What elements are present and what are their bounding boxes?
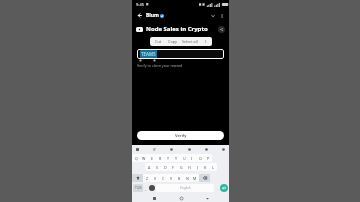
staticText: 9:45 xyxy=(136,2,144,7)
button[interactable]: L xyxy=(209,163,217,171)
staticText: K xyxy=(204,165,207,170)
button[interactable]: Q xyxy=(132,154,140,162)
button[interactable]: Space xyxy=(156,184,214,192)
staticText: V xyxy=(170,176,173,181)
button[interactable]: Keyboard tool 5 xyxy=(221,147,226,152)
button[interactable]: N xyxy=(183,174,191,182)
staticText: L xyxy=(212,165,214,170)
button[interactable]: A xyxy=(145,163,153,171)
staticText: TEAM5 xyxy=(141,51,156,57)
staticText: A xyxy=(148,165,151,170)
staticText: P xyxy=(207,156,210,161)
button[interactable]: I xyxy=(188,154,196,162)
button[interactable]: Back xyxy=(135,11,144,20)
button[interactable]: Home xyxy=(177,194,185,202)
button[interactable]: Play video xyxy=(136,27,143,32)
button[interactable]: M xyxy=(191,174,199,182)
staticText: G xyxy=(180,165,183,170)
button[interactable]: Keyboard tool 1 xyxy=(152,147,157,152)
staticText: J xyxy=(197,165,198,170)
button[interactable]: Blum xyxy=(146,12,164,19)
staticText: Blum xyxy=(146,12,159,19)
button[interactable]: ?123 xyxy=(133,184,143,192)
button[interactable]: Recent apps xyxy=(150,194,158,202)
other: Shift xyxy=(136,176,140,180)
button[interactable]: X xyxy=(151,174,159,182)
staticText: E xyxy=(151,156,153,161)
staticText: H xyxy=(188,165,191,170)
button[interactable]: Period xyxy=(215,184,220,192)
button[interactable]: Keyboard tool 4 xyxy=(204,147,209,152)
button[interactable]: Expand xyxy=(208,11,217,20)
staticText: Copy xyxy=(168,39,177,44)
button[interactable]: More xyxy=(203,37,208,46)
staticText: English xyxy=(180,186,191,190)
button[interactable]: C xyxy=(159,174,167,182)
staticText: X xyxy=(154,176,157,181)
button[interactable]: T xyxy=(164,154,172,162)
button[interactable]: O xyxy=(196,154,204,162)
button[interactable]: S xyxy=(153,163,161,171)
staticText: C xyxy=(162,176,165,181)
other: Backspace xyxy=(203,176,207,180)
staticText: I xyxy=(191,156,193,161)
staticText: S xyxy=(156,165,158,170)
staticText: U xyxy=(183,156,186,161)
staticText: O xyxy=(199,156,202,161)
staticText: M xyxy=(193,176,197,181)
staticText: T xyxy=(167,156,169,161)
staticText: Verify xyxy=(175,133,187,139)
button[interactable]: Verify xyxy=(137,131,224,140)
staticText: ?123 xyxy=(135,186,142,190)
button[interactable]: B xyxy=(175,174,183,182)
staticText: . xyxy=(217,186,219,191)
staticText: R xyxy=(159,156,162,161)
button[interactable]: Z xyxy=(143,174,151,182)
button[interactable]: Comma xyxy=(143,184,149,192)
button[interactable]: TEAM5 xyxy=(137,49,224,59)
button[interactable]: W xyxy=(140,154,148,162)
button[interactable]: U xyxy=(180,154,188,162)
staticText: W xyxy=(142,156,146,161)
button[interactable]: Keyboard tool 0 xyxy=(135,147,140,152)
button[interactable]: P xyxy=(204,154,212,162)
button[interactable]: Keyboard tool 2 xyxy=(169,147,174,152)
staticText: D xyxy=(164,165,167,170)
staticText: Verify to claim your reward xyxy=(137,63,183,68)
button[interactable]: Backspace xyxy=(199,174,210,182)
button[interactable]: Cut xyxy=(154,39,163,44)
staticText: Cut xyxy=(155,39,162,44)
button[interactable]: R xyxy=(156,154,164,162)
button[interactable]: Voice input xyxy=(149,185,155,191)
staticText: B xyxy=(178,176,181,181)
button[interactable]: Select all xyxy=(181,39,199,44)
staticText: , xyxy=(145,186,147,191)
staticText: Select all xyxy=(182,39,198,44)
staticText: N xyxy=(186,176,189,181)
button[interactable]: Back xyxy=(203,194,211,202)
button[interactable]: D xyxy=(161,163,169,171)
button[interactable]: J xyxy=(193,163,201,171)
button[interactable]: V xyxy=(167,174,175,182)
button[interactable]: K xyxy=(201,163,209,171)
button[interactable]: H xyxy=(185,163,193,171)
button[interactable]: F xyxy=(169,163,177,171)
button[interactable]: Shift xyxy=(132,174,143,182)
button[interactable]: More options xyxy=(217,11,226,20)
staticText: F xyxy=(172,165,174,170)
button[interactable]: E xyxy=(148,154,156,162)
button[interactable]: Share xyxy=(218,26,225,33)
staticText: Z xyxy=(146,176,149,181)
button[interactable]: Keyboard tool 3 xyxy=(187,147,192,152)
button[interactable]: Copy xyxy=(167,39,178,44)
button[interactable]: G xyxy=(177,163,185,171)
button[interactable]: Enter xyxy=(220,184,228,192)
staticText: Y xyxy=(175,156,178,161)
button[interactable]: Y xyxy=(172,154,180,162)
staticText: Node Sales in Crypto xyxy=(146,25,208,33)
staticText: Q xyxy=(135,156,138,161)
